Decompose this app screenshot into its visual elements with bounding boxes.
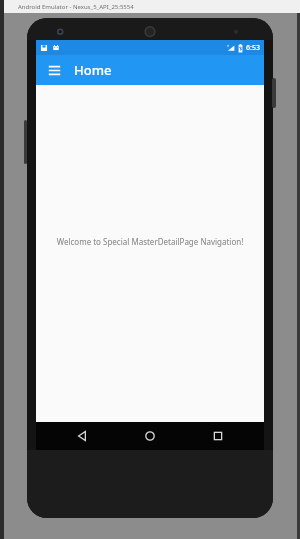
button[interactable]: Home xyxy=(128,422,172,450)
button[interactable]: Back xyxy=(60,422,104,450)
staticText: Home xyxy=(74,61,112,79)
staticText: 6:53 xyxy=(246,43,260,53)
staticText: Welcome to Special MasterDetailPage Navi… xyxy=(42,236,258,247)
button[interactable]: Open navigation menu xyxy=(42,58,66,82)
staticText: Android Emulator - Nexus_5_API_25:5554 xyxy=(18,3,134,11)
button[interactable]: Recent apps xyxy=(196,422,240,450)
